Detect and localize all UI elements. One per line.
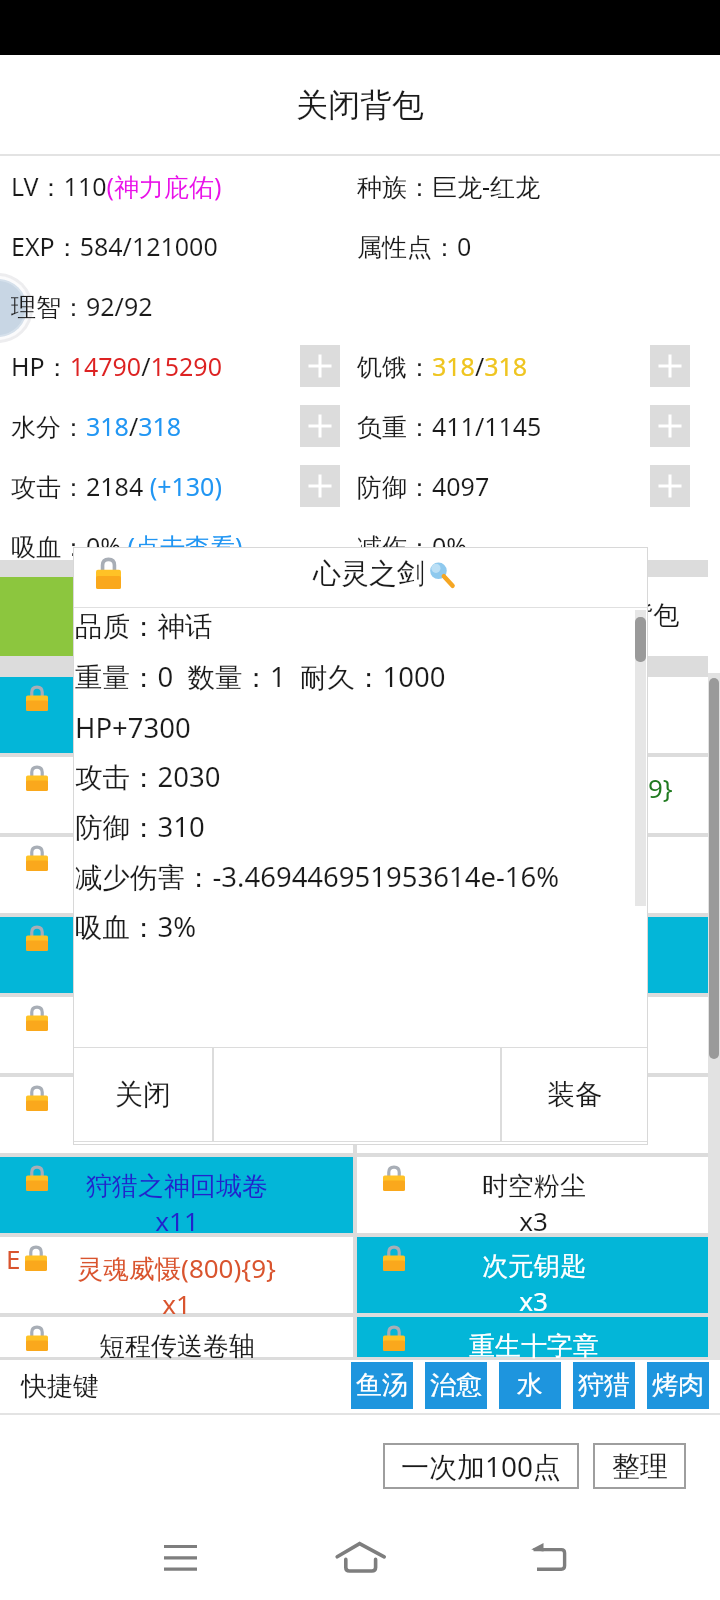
staticText: 减少伤害：-3.469446951953614e-16% [75, 858, 560, 896]
button[interactable]: Home [325, 1536, 397, 1580]
button[interactable]: 关闭 [73, 1047, 213, 1142]
button[interactable]: Add point [300, 345, 340, 387]
staticText: HP+7300 [75, 709, 191, 746]
button[interactable]: 次元钥匙 [357, 1237, 710, 1313]
staticText: 攻击：2030 [75, 758, 221, 796]
button[interactable] [0, 837, 353, 913]
staticText: 种族：巨龙-红龙 [357, 169, 541, 203]
button[interactable]: 一次加100点 [383, 1443, 579, 1489]
button[interactable]: 治愈 [425, 1362, 487, 1409]
button[interactable]: Recent apps [140, 1526, 220, 1578]
staticText: 全部整理 [121, 599, 233, 634]
button[interactable] [357, 917, 710, 993]
staticText: 短程传送卷轴 [99, 1330, 255, 1363]
staticText: x11 [155, 1203, 199, 1238]
button[interactable]: 短程传送卷轴 [0, 1317, 353, 1357]
staticText: 治愈 [430, 1369, 482, 1402]
staticText: 减伤：0% [357, 529, 468, 563]
staticText: x1 [162, 1286, 191, 1321]
button[interactable]: 整理 [593, 1443, 686, 1489]
button[interactable]: Add point [300, 405, 340, 447]
button[interactable]: 整理打开背包 [357, 577, 710, 656]
staticText: 装备 [547, 1077, 603, 1112]
button[interactable]: Back [515, 1536, 587, 1580]
staticText: 吸血：3% [75, 908, 197, 946]
staticText: 灵魂威慑(800){9} [77, 1250, 276, 1286]
button[interactable]: 鱼汤 [351, 1362, 413, 1409]
button[interactable] [213, 1047, 501, 1142]
button[interactable] [0, 997, 353, 1073]
staticText: 狩猎之神回城卷 [86, 1170, 268, 1203]
button[interactable]: Add point [650, 465, 690, 507]
button[interactable] [0, 917, 353, 993]
staticText: 属性点：0 [357, 229, 472, 263]
staticText: 次元钥匙 [482, 1250, 586, 1283]
button[interactable]: 9} [357, 757, 710, 833]
staticText: x3 [519, 1203, 548, 1238]
button[interactable]: 关闭背包 [0, 55, 720, 154]
staticText: E [6, 1241, 21, 1276]
staticText: 水 [517, 1369, 543, 1402]
staticText: 整理 [612, 1449, 668, 1484]
staticText: 关闭背包 [296, 85, 424, 125]
button[interactable]: Add point [300, 465, 340, 507]
staticText: 快捷键 [21, 1370, 99, 1403]
button[interactable]: 时空粉尘 [357, 1157, 710, 1233]
staticText: x3 [519, 1283, 548, 1318]
staticText: 水分：318/318 [11, 409, 182, 443]
staticText: 攻击：2184 (+130) [11, 469, 222, 503]
button[interactable]: Add point [650, 405, 690, 447]
staticText: 理智：92/92 [11, 289, 153, 323]
button[interactable]: 烤肉 [647, 1362, 709, 1409]
button[interactable] [0, 1077, 353, 1153]
staticText: HP：14790/15290 [11, 349, 222, 383]
staticText: 一次加100点 [401, 1447, 562, 1485]
staticText: 饥饿：318/318 [357, 349, 528, 383]
staticText: 时空粉尘 [482, 1170, 586, 1203]
staticText: 鱼汤 [356, 1369, 408, 1402]
staticText: 烤肉 [652, 1369, 704, 1402]
staticText: 9} [648, 770, 673, 805]
button[interactable] [357, 677, 710, 753]
button[interactable]: 装备 [501, 1047, 648, 1142]
button[interactable] [0, 677, 353, 753]
button[interactable]: 狩猎 [573, 1362, 635, 1409]
staticText: 心灵之剑 [313, 556, 425, 591]
staticText: 狩猎 [578, 1369, 630, 1402]
button[interactable]: 重生十字章 [357, 1317, 710, 1357]
staticText: 防御：310 [75, 808, 205, 846]
staticText: LV：110(神力庇佑) [11, 169, 222, 203]
button[interactable] [357, 1077, 710, 1153]
staticText: 整理打开背包 [523, 599, 679, 632]
button[interactable]: 全部整理 [0, 577, 353, 656]
staticText: 品质：神话 [75, 610, 213, 645]
staticText: 负重：411/1145 [357, 409, 542, 443]
staticText: 重量：0 数量：1 耐久：1000 [75, 658, 446, 696]
button[interactable]: Add point [650, 345, 690, 387]
button[interactable]: E [0, 1237, 353, 1313]
button[interactable]: 狩猎之神回城卷 [0, 1157, 353, 1233]
button[interactable] [357, 837, 710, 913]
staticText: 防御：4097 [357, 469, 490, 503]
staticText: 关闭 [115, 1077, 171, 1112]
button[interactable]: 水 [499, 1362, 561, 1409]
staticText: 重生十字章 [469, 1330, 599, 1363]
staticText: EXP：584/121000 [11, 229, 218, 263]
button[interactable] [0, 757, 353, 833]
staticText: 吸血：0% (点击查看) [11, 529, 243, 563]
button[interactable] [357, 997, 710, 1073]
